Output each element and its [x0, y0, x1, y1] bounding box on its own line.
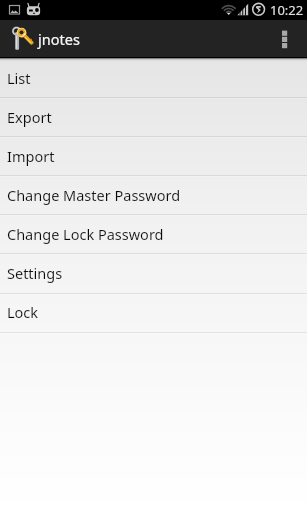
button[interactable]: Import — [0, 136, 307, 175]
button[interactable]: Export — [0, 97, 307, 136]
button[interactable]: Settings — [0, 253, 307, 292]
button[interactable]: List — [0, 58, 307, 97]
staticText: Change Lock Password — [7, 224, 164, 244]
staticText: Lock — [7, 302, 39, 322]
button[interactable]: Change Lock Password — [0, 214, 307, 253]
staticText: Settings — [7, 263, 63, 283]
staticText: Change Master Password — [7, 185, 181, 205]
button[interactable]: More options — [271, 20, 299, 57]
button[interactable]: Change Master Password — [0, 175, 307, 214]
staticText: jnotes — [38, 29, 80, 49]
staticText: List — [7, 68, 31, 88]
button[interactable]: Lock — [0, 292, 307, 331]
staticText: 10:22 — [270, 1, 304, 19]
staticText: Export — [7, 107, 52, 127]
staticText: Import — [7, 146, 55, 166]
